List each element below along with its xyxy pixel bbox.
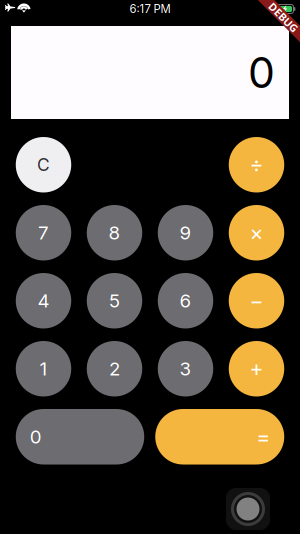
staticText: − — [249, 288, 263, 314]
staticText: = — [256, 424, 270, 450]
staticText: 7 — [38, 221, 49, 244]
button[interactable]: 7 — [16, 205, 71, 260]
button[interactable]: − — [229, 273, 284, 328]
staticText: 2 — [109, 357, 120, 380]
staticText: ÷ — [249, 152, 263, 178]
staticText: 1 — [39, 357, 47, 380]
button[interactable]: 1 — [16, 341, 71, 396]
button[interactable]: 9 — [158, 205, 213, 260]
button[interactable]: + — [229, 341, 284, 396]
button[interactable]: 6 — [158, 273, 213, 328]
staticText: 8 — [108, 221, 120, 244]
button[interactable]: 5 — [87, 273, 142, 328]
button[interactable]: C — [16, 137, 71, 192]
staticText: 4 — [37, 289, 49, 312]
button[interactable]: × — [229, 205, 284, 260]
staticText: + — [249, 356, 263, 382]
button[interactable]: 8 — [87, 205, 142, 260]
button[interactable]: = — [155, 409, 284, 464]
staticText: 0 — [248, 47, 275, 98]
button[interactable]: ÷ — [229, 137, 284, 192]
staticText: 6:17 PM — [129, 2, 170, 16]
staticText: × — [249, 220, 263, 246]
staticText: 3 — [179, 357, 191, 380]
staticText: 9 — [179, 221, 191, 244]
button[interactable]: 0 — [16, 409, 144, 464]
button[interactable]: 2 — [87, 341, 142, 396]
staticText: 6 — [179, 289, 191, 312]
staticText: 5 — [109, 289, 120, 312]
button[interactable]: 3 — [158, 341, 213, 396]
staticText: C — [37, 154, 50, 175]
button[interactable]: 4 — [16, 273, 71, 328]
staticText: DEBUG — [265, 10, 300, 25]
staticText: 0 — [30, 425, 42, 448]
